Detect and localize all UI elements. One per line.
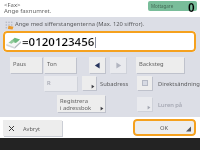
- button[interactable]: R: [44, 76, 78, 92]
- button[interactable]: =0120123456: [3, 31, 196, 52]
- button[interactable]: Registrera i adressbok: [57, 95, 106, 113]
- button[interactable]: Paus: [10, 57, 43, 74]
- button[interactable]: Backsteg: [136, 57, 185, 74]
- button[interactable]: Avbryt: [3, 120, 63, 137]
- staticText: Direktsändning: [158, 80, 200, 88]
- staticText: Avbryt: [23, 125, 41, 133]
- staticText: Backsteg: [139, 60, 164, 68]
- staticText: Ange faxnumret.: [4, 7, 52, 15]
- button[interactable]: Luren på: [137, 97, 153, 112]
- staticText: OK: [160, 124, 169, 132]
- button[interactable]: Subadress: [82, 76, 97, 91]
- staticText: Luren på: [158, 101, 183, 109]
- button[interactable]: Direktsändning: [137, 76, 153, 91]
- staticText: <Fax>: [4, 1, 21, 9]
- staticText: Ton: [47, 60, 57, 68]
- button[interactable]: Move cursor left: [89, 57, 106, 74]
- staticText: Registrera i adressbok: [60, 97, 92, 112]
- staticText: Paus: [13, 60, 27, 68]
- staticText: 0: [188, 0, 195, 16]
- staticText: Subadress: [100, 80, 129, 88]
- button[interactable]: Ton: [44, 57, 77, 74]
- button[interactable]: OK: [133, 119, 196, 136]
- button[interactable]: Mottagare: [148, 1, 197, 11]
- button[interactable]: Move cursor right: [110, 57, 127, 74]
- staticText: =0120123456: [22, 34, 95, 50]
- staticText: Mottagare: [151, 3, 174, 9]
- staticText: Ange med sifferstangenterna (Max. 120 si…: [15, 20, 145, 28]
- staticText: R: [47, 79, 51, 87]
